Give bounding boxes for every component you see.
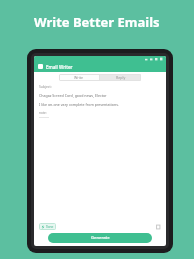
staticText: Generate [91, 235, 110, 241]
button[interactable]: Copy [155, 224, 161, 230]
button[interactable]: Write [59, 74, 99, 81]
staticText: I like on-one vary complete from present… [39, 102, 119, 107]
staticText: Email Writer [46, 64, 73, 70]
staticText: Write Better Emails [34, 13, 160, 31]
staticText: Chagaz Screed Cord, good news, Elector [39, 93, 107, 98]
button[interactable]: Reply [100, 74, 141, 81]
staticText: note: [39, 111, 47, 115]
button[interactable]: Generate [48, 233, 152, 243]
staticText: Reply [116, 75, 126, 80]
button[interactable]: Menu [38, 64, 43, 69]
button[interactable]: Tone [39, 223, 56, 230]
staticText: Tone [46, 225, 54, 229]
staticText: Subject: [39, 84, 52, 89]
staticText: Write [74, 75, 84, 80]
